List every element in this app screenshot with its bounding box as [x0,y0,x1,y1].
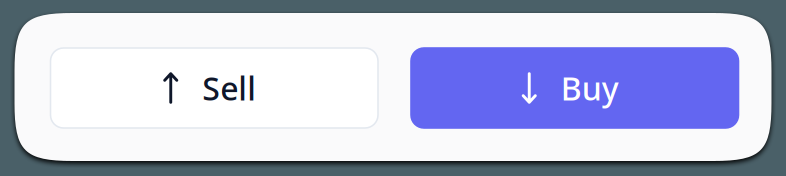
staticText: Sell [202,67,256,109]
button[interactable]: Buy [411,48,738,128]
button[interactable]: Sell [50,48,378,128]
staticText: Buy [561,67,619,109]
